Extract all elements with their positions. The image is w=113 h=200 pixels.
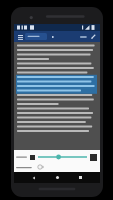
button[interactable]: Back (29, 173, 38, 182)
button[interactable]: Increase text size (89, 153, 98, 162)
button[interactable] (14, 42, 100, 150)
button[interactable]: Bible version (78, 33, 89, 41)
button[interactable]: Edit (89, 32, 98, 41)
button[interactable] (25, 33, 47, 40)
button[interactable]: Home (53, 173, 62, 182)
button[interactable]: Night mode toggle (37, 164, 45, 170)
button[interactable]: Open navigation menu (16, 33, 24, 41)
button[interactable]: Decrease text size (14, 151, 100, 163)
button[interactable]: Recent apps (76, 173, 85, 182)
button[interactable]: Chapter (49, 33, 56, 40)
button[interactable]: Night mode toggle (14, 163, 100, 171)
button[interactable]: Decrease text size (29, 154, 36, 161)
button[interactable]: Text size slider (38, 152, 87, 162)
